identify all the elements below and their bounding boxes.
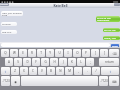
staticText: I'm on my way (104, 28, 119, 32)
button[interactable]: Emoji (11, 76, 20, 86)
staticText: return (105, 60, 114, 64)
button[interactable]: T (37, 49, 45, 57)
button[interactable]: , (74, 67, 82, 75)
staticText: M (68, 69, 71, 73)
staticText: L (80, 60, 82, 64)
button[interactable]: Space (21, 76, 98, 86)
button[interactable]: Shift (101, 67, 119, 75)
button[interactable]: R (28, 49, 36, 57)
button[interactable]: Backspace (109, 49, 119, 57)
button[interactable]: Hide keyboard (109, 76, 119, 86)
staticText: / (95, 69, 97, 73)
staticText: Great, see you (104, 36, 119, 40)
staticText: S (17, 60, 19, 64)
button[interactable]: Hey! Just making sure you're still on fo… (1, 11, 23, 16)
button[interactable]: .?123 (1, 76, 10, 86)
staticText: D (26, 60, 29, 64)
staticText: E (22, 51, 24, 55)
button[interactable]: Back to Messages (0, 3, 9, 6)
button[interactable]: U (55, 49, 63, 57)
button[interactable]: Shift (1, 67, 10, 75)
staticText: ⇧ (4, 70, 7, 73)
button[interactable]: O (73, 49, 81, 57)
staticText: Q (4, 51, 7, 55)
button[interactable]: X (20, 67, 28, 75)
staticText: ; (90, 60, 91, 64)
button[interactable]: ] (100, 49, 108, 57)
staticText: V (41, 69, 43, 73)
button[interactable]: Z (11, 67, 19, 75)
staticText: . (87, 69, 88, 73)
button[interactable]: K (68, 58, 76, 66)
button[interactable]: I'm on my way (103, 28, 120, 32)
button[interactable]: S (14, 58, 22, 66)
button[interactable]: Great, see you (103, 36, 120, 40)
staticText: .?123 (2, 79, 10, 83)
button[interactable]: N (56, 67, 64, 75)
button[interactable]: L (77, 58, 85, 66)
button[interactable]: C (29, 67, 37, 75)
button[interactable]: V (38, 67, 46, 75)
staticText: .?123 (100, 79, 108, 83)
staticText: G (44, 60, 47, 64)
button[interactable]: See you soon (1, 30, 17, 34)
staticText: T (40, 51, 42, 55)
staticText: A (8, 60, 10, 64)
button[interactable]: I'll be at the restaurant at 8pm (96, 16, 120, 22)
staticText: K (71, 60, 73, 64)
staticText: R (31, 51, 33, 55)
button[interactable]: J (59, 58, 67, 66)
button[interactable]: Send (111, 44, 119, 47)
staticText: Sounds good! (2, 22, 16, 26)
staticText: Kate Bell (53, 4, 68, 8)
button[interactable]: ; (86, 58, 94, 66)
staticText: , (78, 69, 79, 73)
button[interactable]: / (92, 67, 100, 75)
staticText: N (59, 69, 62, 73)
staticText: P (85, 51, 87, 55)
button[interactable]: Sounds good! (1, 22, 17, 26)
button[interactable]: I (64, 49, 72, 57)
staticText: C (32, 69, 34, 73)
button[interactable]: E (19, 49, 27, 57)
staticText: I (67, 51, 69, 55)
button[interactable]: W (10, 49, 18, 57)
staticText: B (50, 69, 52, 73)
staticText: ⇧ (109, 70, 112, 73)
button[interactable]: .?123 (99, 76, 108, 86)
button[interactable]: H (50, 58, 58, 66)
staticText: See you soon (2, 30, 16, 34)
button[interactable]: Contact info (114, 3, 120, 6)
button[interactable]: F (32, 58, 40, 66)
button[interactable]: B (47, 67, 55, 75)
button[interactable]: [ (91, 49, 99, 57)
staticText: J (63, 60, 64, 64)
button[interactable]: D (23, 58, 31, 66)
staticText: F (35, 60, 37, 64)
button[interactable]: return (99, 58, 119, 66)
staticText: Messages (0, 3, 9, 6)
staticText: Z (14, 69, 16, 73)
staticText: U (58, 51, 61, 55)
button[interactable]: . (83, 67, 91, 75)
staticText: O (76, 51, 79, 55)
staticText: Y (49, 51, 51, 55)
staticText: ⌫ (112, 52, 117, 55)
staticText: Send (112, 44, 118, 47)
button[interactable]: G (41, 58, 49, 66)
staticText: Hey! Just making sure you're still on fo… (2, 11, 22, 16)
button[interactable]: Q (1, 49, 9, 57)
staticText: [ (95, 51, 96, 55)
staticText: H (53, 60, 56, 64)
staticText: I'll be at the restaurant at 8pm (97, 16, 119, 22)
button[interactable]: A (5, 58, 13, 66)
staticText: ⌨ (112, 80, 117, 83)
button[interactable]: P (82, 49, 90, 57)
button[interactable]: Y (46, 49, 54, 57)
button[interactable]: M (65, 67, 73, 75)
staticText: X (23, 69, 25, 73)
staticText: ◉ (14, 80, 17, 83)
staticText: W (13, 51, 16, 55)
staticText: ] (104, 51, 105, 55)
